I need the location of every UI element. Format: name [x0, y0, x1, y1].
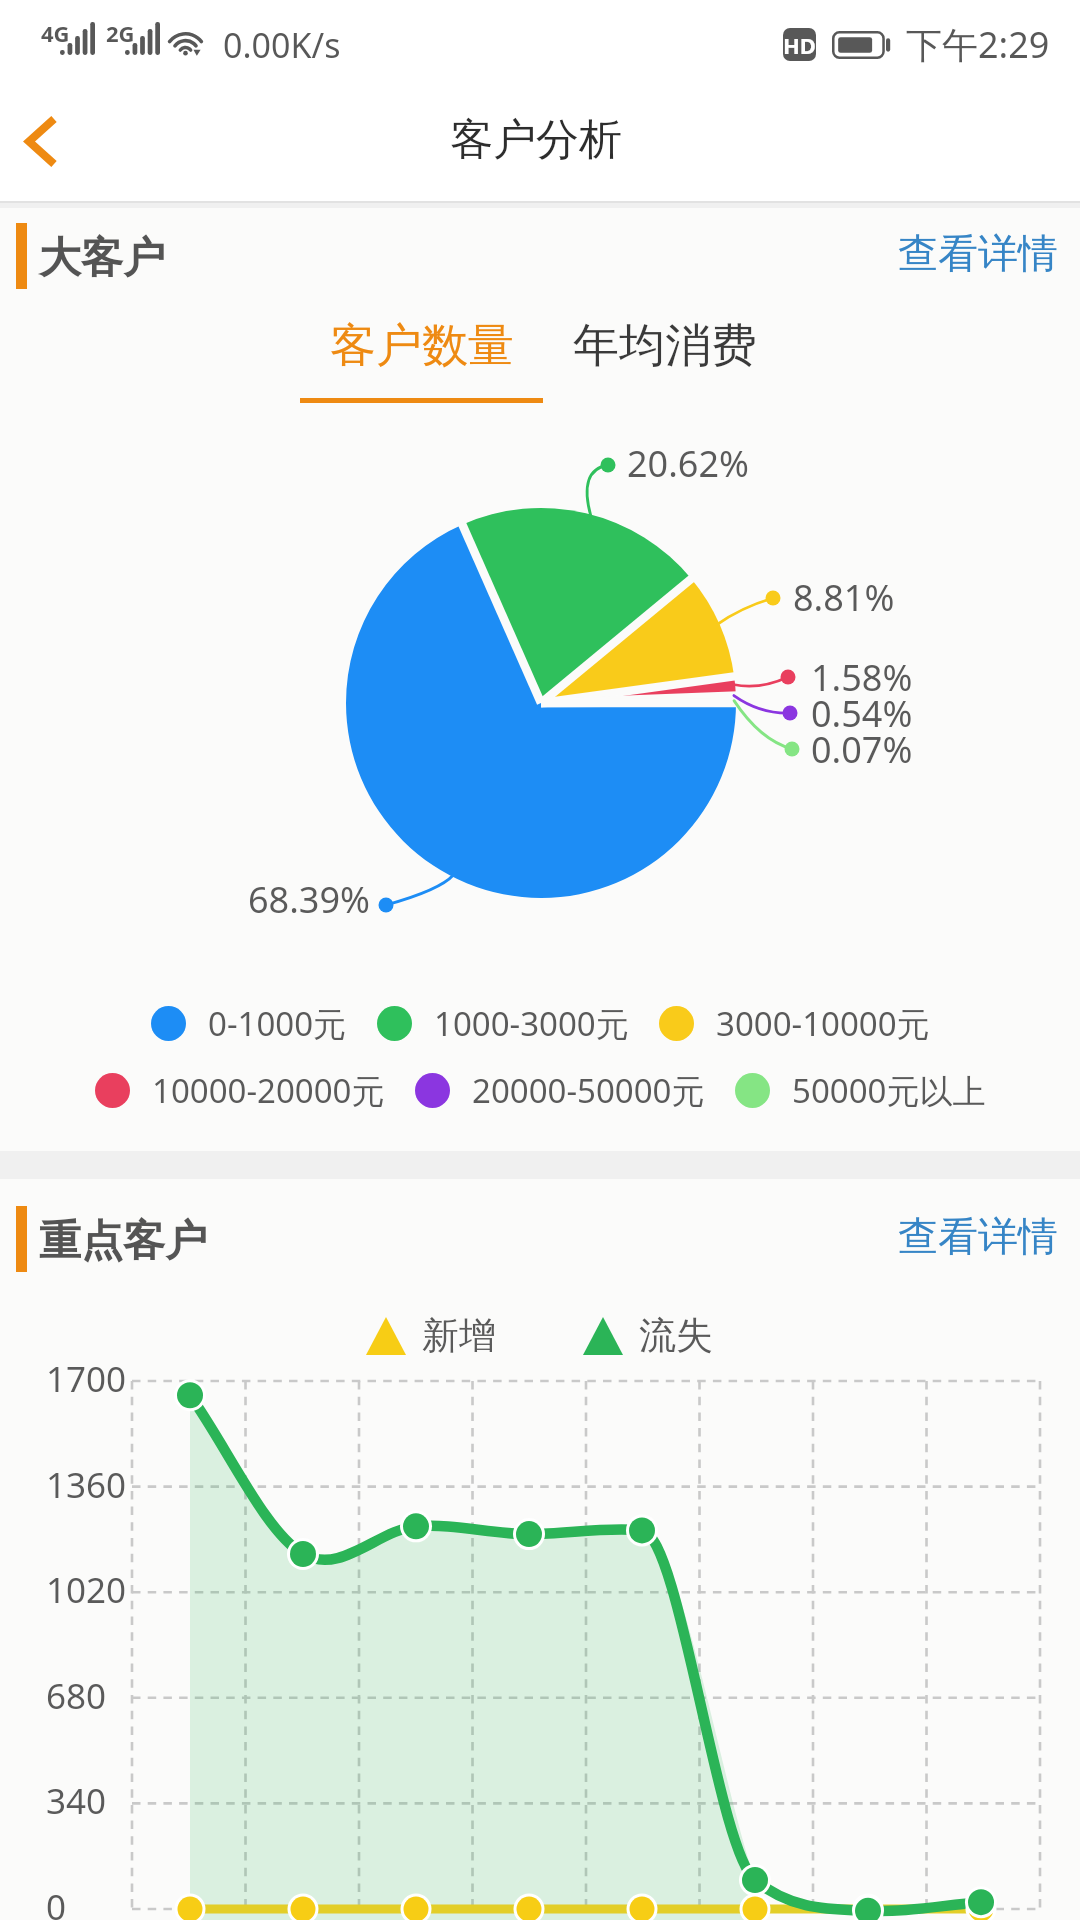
staticText: HD [783, 30, 816, 60]
staticText: 大客户 [39, 232, 165, 285]
staticText: 1000-3000元 [434, 1001, 629, 1046]
staticText: 340 [46, 1777, 107, 1825]
button[interactable]: 0-1000元 [151, 1000, 347, 1046]
staticText: 下午2:29 [906, 20, 1050, 69]
button[interactable]: Back [0, 81, 104, 203]
staticText: 年均消费 [573, 317, 757, 375]
staticText: 20000-50000元 [472, 1068, 705, 1113]
button[interactable]: 3000-10000元 [659, 1000, 930, 1046]
staticText: 1.58% [811, 653, 913, 702]
staticText: 客户分析 [450, 113, 622, 167]
staticText: 50000元以上 [792, 1068, 986, 1113]
staticText: 1360 [46, 1461, 127, 1509]
button[interactable]: 20000-50000元 [415, 1067, 705, 1113]
staticText: 重点客户 [39, 1215, 207, 1268]
staticText: 0.54% [811, 689, 913, 738]
staticText: 0 [46, 1883, 67, 1920]
button[interactable]: 流失 [583, 1312, 713, 1360]
button[interactable]: 年均消费 [565, 317, 765, 409]
staticText: 新增 [422, 1312, 496, 1359]
staticText: 10000-20000元 [152, 1068, 385, 1113]
staticText: 8.81% [793, 573, 895, 622]
staticText: 查看详情 [898, 228, 1058, 278]
staticText: 20.62% [627, 439, 749, 488]
staticText: 查看详情 [898, 1211, 1058, 1261]
button[interactable]: 10000-20000元 [95, 1067, 385, 1113]
staticText: 4G [41, 18, 70, 48]
staticText: 1020 [46, 1566, 127, 1614]
staticText: 680 [46, 1672, 107, 1720]
staticText: 0-1000元 [208, 1001, 347, 1046]
staticText: 3000-10000元 [716, 1001, 930, 1046]
button[interactable]: 新增 [366, 1312, 496, 1360]
button[interactable]: 客户数量 [300, 311, 543, 403]
staticText: 1700 [46, 1355, 127, 1403]
staticText: 0.07% [811, 725, 913, 774]
staticText: 68.39% [248, 875, 370, 924]
button[interactable]: 50000元以上 [735, 1067, 986, 1113]
button[interactable]: 1000-3000元 [377, 1000, 629, 1046]
button[interactable]: 查看详情 [920, 1206, 1080, 1272]
staticText: 流失 [639, 1312, 713, 1359]
staticText: 2G [106, 18, 135, 48]
staticText: 0.00K/s [223, 22, 341, 59]
button[interactable]: 查看详情 [920, 223, 1080, 289]
staticText: 客户数量 [330, 317, 514, 375]
